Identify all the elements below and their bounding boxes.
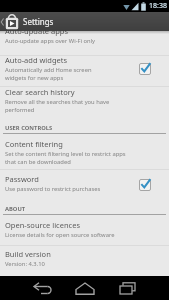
staticText: Settings — [23, 16, 54, 27]
staticText: Automatically add Home screen — [5, 66, 92, 74]
button[interactable]: Content filtering — [0, 139, 169, 168]
staticText: widgets for new apps — [5, 74, 64, 82]
button[interactable]: Auto-add widgets — [0, 55, 169, 85]
staticText: Auto-add widgets — [5, 55, 68, 65]
button[interactable]: Password — [0, 174, 169, 200]
staticText: Open-source licences — [5, 220, 80, 230]
staticText: Set the content filtering level to restr… — [5, 150, 126, 158]
staticText: 18:38 — [149, 1, 167, 11]
staticText: USER CONTROLS — [5, 124, 53, 132]
staticText: Remove all the searches that you have — [5, 98, 110, 106]
staticText: Password — [5, 174, 39, 184]
button[interactable]: Clear search history — [0, 87, 169, 120]
button[interactable]: Settings — [0, 12, 169, 31]
staticText: ABOUT — [5, 205, 26, 213]
staticText: that can be downloaded — [5, 158, 71, 166]
staticText: Auto-update apps over Wi-Fi only — [5, 37, 96, 45]
button[interactable] — [22, 276, 64, 300]
staticText: Auto-update apps — [5, 31, 69, 36]
staticText: Content filtering — [5, 139, 63, 149]
staticText: Version: 4.3.10 — [5, 260, 45, 268]
staticText: Clear search history — [5, 87, 75, 97]
button[interactable]: Auto-update apps — [0, 31, 169, 53]
staticText: Use password to restrict purchases — [5, 185, 101, 193]
button[interactable] — [106, 276, 148, 300]
staticText: License details for open source software — [5, 231, 115, 239]
staticText: Build version — [5, 249, 51, 259]
button[interactable] — [64, 276, 106, 300]
button[interactable]: Build version — [0, 249, 169, 274]
button[interactable]: Open-source licences — [0, 220, 169, 245]
staticText: performed — [5, 106, 35, 114]
